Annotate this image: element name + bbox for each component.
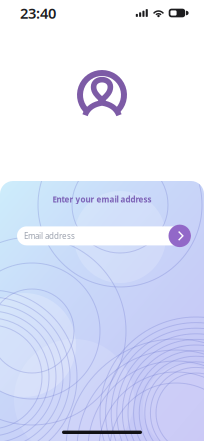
staticText: Enter your email address <box>52 194 151 205</box>
staticText: 23:40 <box>20 3 56 23</box>
button[interactable]: Email address <box>17 225 191 247</box>
staticText: Email address <box>24 231 75 241</box>
